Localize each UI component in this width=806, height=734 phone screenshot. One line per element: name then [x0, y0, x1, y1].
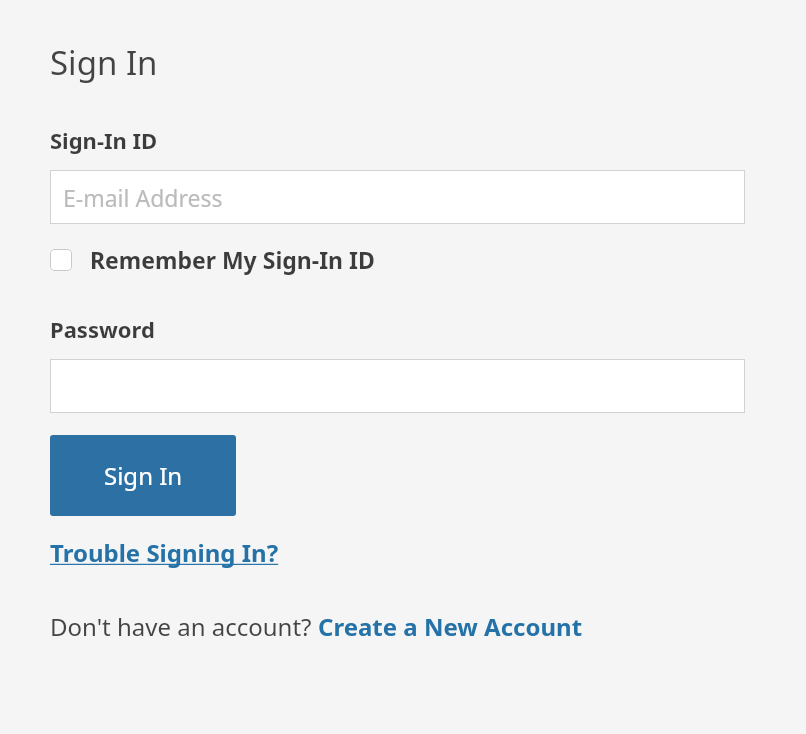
staticText: Don't have an account?	[50, 610, 318, 643]
button[interactable]: Create a New Account	[318, 610, 583, 643]
staticText: E-mail Address	[63, 182, 223, 213]
button[interactable]	[50, 359, 745, 413]
staticText: Sign-In ID	[50, 125, 158, 155]
button[interactable]: Trouble Signing In?	[50, 536, 279, 569]
button[interactable]: Remember My Sign-In ID	[50, 244, 375, 275]
staticText: Sign In	[104, 459, 183, 492]
staticText: Remember My Sign-In ID	[90, 244, 375, 275]
staticText: Sign In	[50, 40, 158, 85]
staticText: Create a New Account	[318, 610, 583, 643]
button[interactable]: Sign In	[50, 435, 236, 516]
staticText: Password	[50, 314, 155, 344]
button[interactable]: E-mail Address	[50, 170, 745, 224]
staticText: Trouble Signing In?	[50, 536, 279, 569]
